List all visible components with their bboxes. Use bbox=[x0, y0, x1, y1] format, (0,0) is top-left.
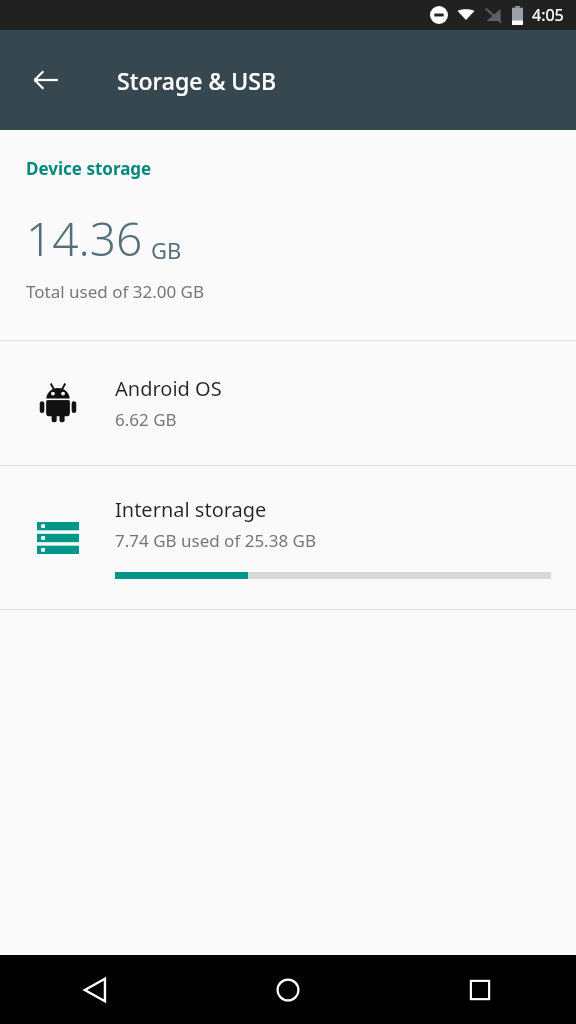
staticText: 6.62 GB bbox=[115, 408, 177, 431]
button[interactable]: Internal storage bbox=[0, 466, 576, 609]
staticText: Total used of 32.00 GB bbox=[26, 280, 204, 303]
staticText: GB bbox=[151, 235, 182, 265]
staticText: Storage & USB bbox=[117, 65, 276, 96]
button[interactable]: Recent apps bbox=[384, 955, 576, 1024]
button[interactable]: Back bbox=[22, 56, 70, 104]
staticText: Android OS bbox=[115, 375, 222, 402]
staticText: 4:05 bbox=[532, 4, 564, 26]
button[interactable]: Device storage bbox=[0, 130, 576, 340]
button[interactable]: Android OS bbox=[0, 341, 576, 465]
button[interactable]: Back bbox=[0, 955, 192, 1024]
staticText: 7.74 GB used of 25.38 GB bbox=[115, 529, 316, 552]
staticText: Internal storage bbox=[115, 496, 267, 523]
staticText: 14.36 bbox=[26, 207, 143, 270]
button[interactable]: Home bbox=[192, 955, 384, 1024]
staticText: Device storage bbox=[26, 157, 152, 180]
